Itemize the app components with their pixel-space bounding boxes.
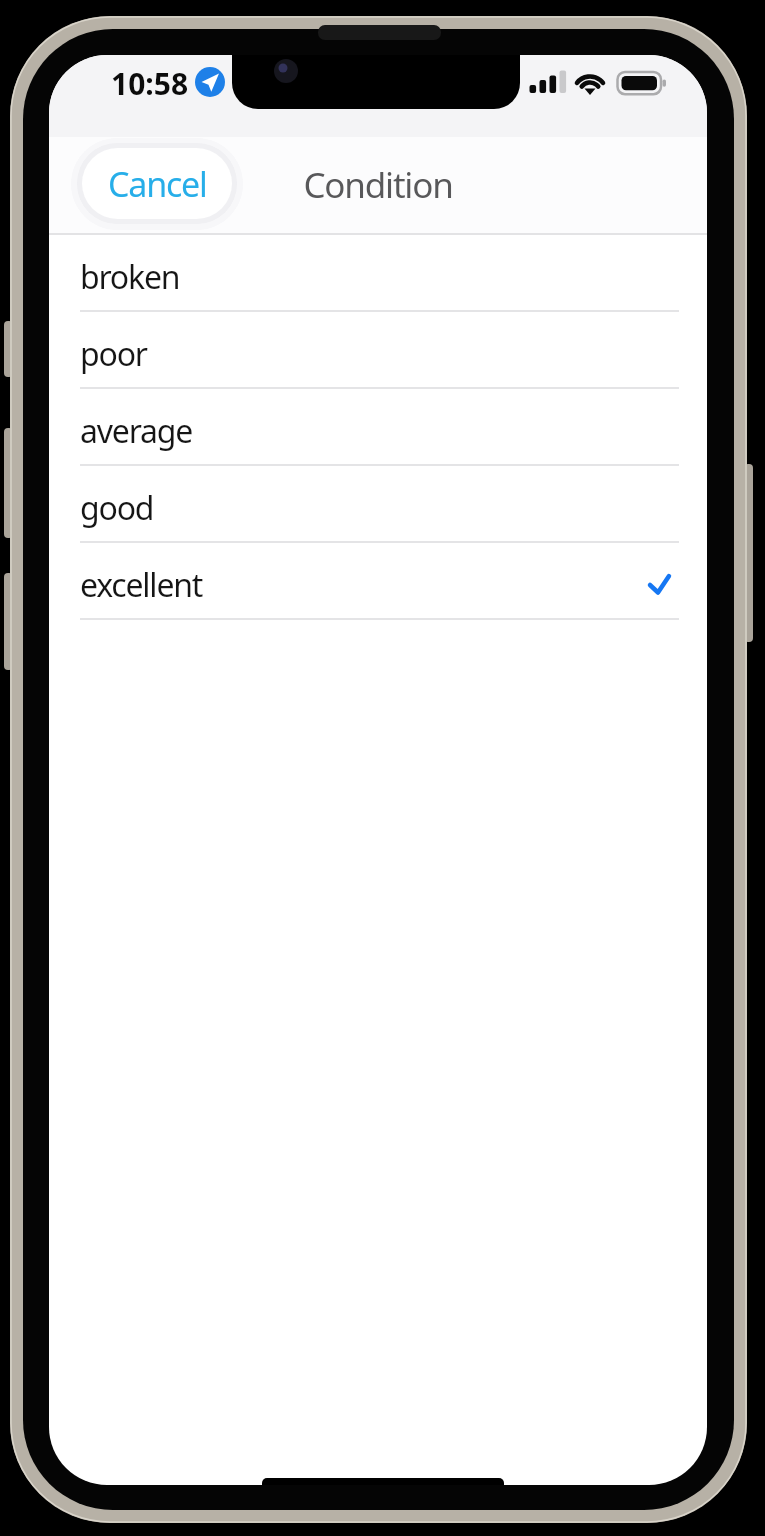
button[interactable]: Cancel — [82, 148, 232, 219]
staticText: broken — [80, 255, 180, 299]
staticText: excellent — [80, 563, 203, 607]
button[interactable]: poor — [49, 312, 707, 389]
button[interactable]: excellent — [49, 543, 707, 620]
staticText: 10:58 — [111, 63, 189, 104]
button[interactable]: average — [49, 389, 707, 466]
button[interactable]: good — [49, 466, 707, 543]
staticText: good — [80, 486, 154, 530]
staticText: Condition — [49, 161, 707, 209]
staticText: poor — [80, 332, 147, 376]
button[interactable]: broken — [49, 235, 707, 312]
staticText: average — [80, 409, 193, 453]
staticText: Cancel — [108, 161, 207, 207]
